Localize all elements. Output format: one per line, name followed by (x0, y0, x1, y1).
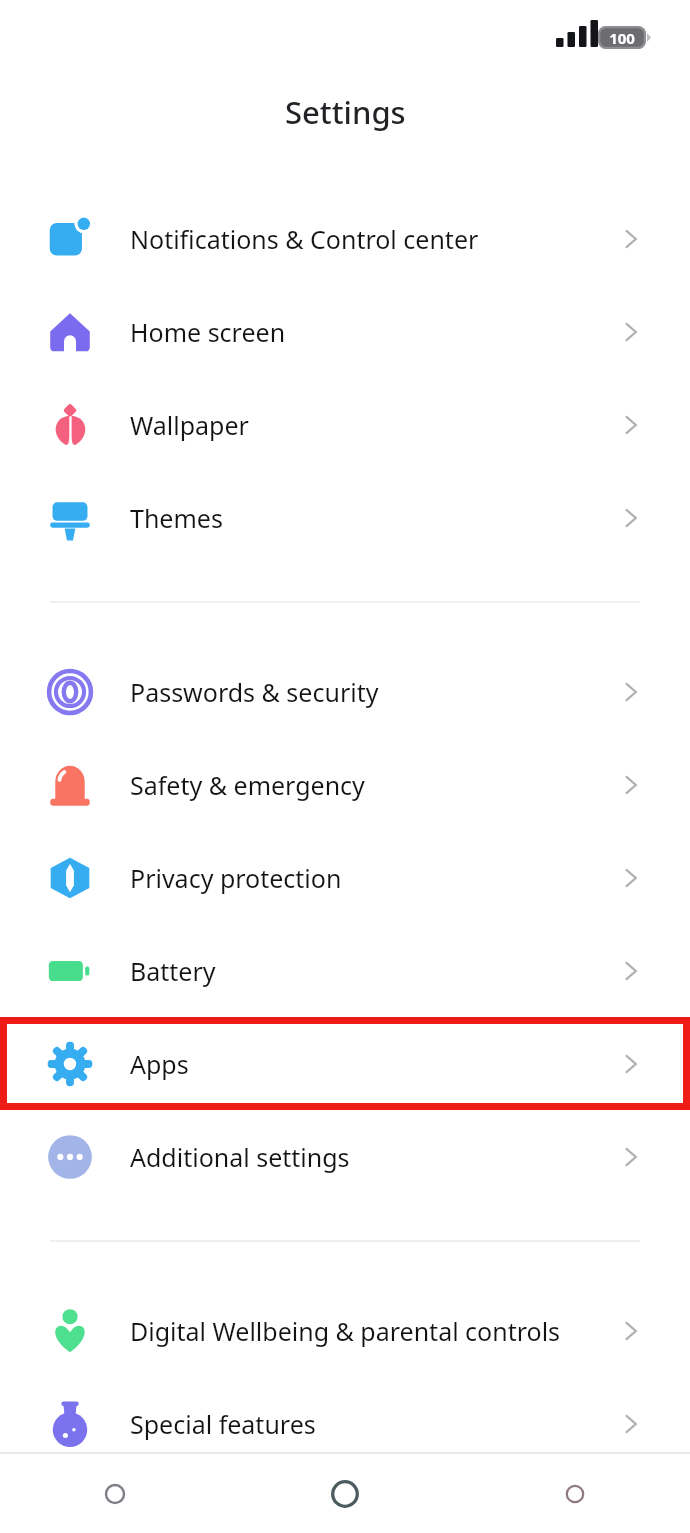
staticText: Home screen (130, 315, 286, 349)
button[interactable]: Notifications & Control center (0, 192, 690, 285)
button[interactable]: Special features (0, 1377, 690, 1470)
staticText: Special features (130, 1407, 316, 1441)
button[interactable]: Passwords & security (0, 645, 690, 738)
button[interactable]: Apps (0, 1017, 690, 1110)
staticText: Privacy protection (130, 861, 342, 895)
staticText: Passwords & security (130, 675, 379, 709)
button[interactable]: Home (230, 1454, 460, 1533)
button[interactable]: Home screen (0, 285, 690, 378)
button[interactable]: Battery (0, 924, 690, 1017)
staticText: Settings (285, 91, 406, 133)
staticText: Apps (130, 1047, 189, 1081)
staticText: Safety & emergency (130, 768, 365, 802)
staticText: Additional settings (130, 1140, 350, 1174)
staticText: Digital Wellbeing & parental controls (130, 1314, 561, 1348)
staticText: Notifications & Control center (130, 222, 479, 256)
button[interactable]: Safety & emergency (0, 738, 690, 831)
staticText: Themes (130, 501, 223, 535)
button[interactable]: Wallpaper (0, 378, 690, 471)
staticText: Battery (130, 954, 216, 988)
button[interactable]: Additional settings (0, 1110, 690, 1203)
button[interactable]: Back (460, 1454, 690, 1533)
button[interactable]: Recent apps (0, 1454, 230, 1533)
button[interactable]: Privacy protection (0, 831, 690, 924)
button[interactable]: Digital Wellbeing & parental controls (0, 1284, 690, 1377)
staticText: Wallpaper (130, 408, 249, 442)
staticText: 100 (601, 28, 643, 48)
button[interactable]: Themes (0, 471, 690, 564)
